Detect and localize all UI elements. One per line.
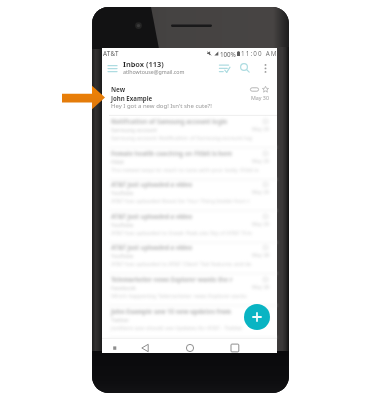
staticText: Twitter [111,316,130,323]
button[interactable]: Female health coaching on Fitbit is here [102,148,277,180]
staticText: AT&T has uploaded to Sneak Peak aka Sky … [111,229,253,236]
button[interactable]: AT&T just uploaded a video [102,179,277,211]
button[interactable]: AT&T just uploaded a video [102,242,277,274]
button[interactable]: Compose [244,304,270,330]
staticText: Fitbit [111,158,125,165]
staticText: AT&T just uploaded a video [111,212,193,220]
staticText: Female health coaching on Fitbit is here [111,149,233,157]
staticText: John Example [111,94,153,102]
button[interactable]: Back [135,338,155,353]
staticText: YouTube [111,252,134,259]
button[interactable]: Home [180,338,200,353]
button[interactable]: Sort [213,60,235,76]
staticText: YouTube [111,189,134,196]
button[interactable]: Notification of Samsung account login [102,116,277,148]
staticText: atlhowtouse@gmail.com [123,68,185,75]
staticText: May 29 [252,189,270,196]
staticText: 100% [220,50,236,58]
staticText: May 28 [252,284,270,291]
button[interactable]: AT&T just uploaded a video [102,211,277,243]
staticText: May 28 [252,252,270,259]
staticText: May 29 [252,221,270,228]
staticText: YouTube [111,221,134,228]
staticText: Telemarketer news Explorer wants the r [111,275,233,283]
staticText: Inbox (113) [123,59,164,69]
staticText: AT&T has uploaded Boost for Your Thing I… [111,197,250,204]
staticText: Jonthere saw should see Updates for AT&T… [111,324,243,331]
button[interactable]: John Example saw 10 new updates from [102,306,277,338]
staticText: John Example saw 10 new updates from [111,307,232,315]
button[interactable]: Telemarketer news Explorer wants the r [102,274,277,306]
staticText: Which happening Telemarketer news Explor… [111,292,247,299]
staticText: AT&T just uploaded a video [111,243,193,251]
staticText: 11:00 AM [241,49,278,58]
button[interactable]: Recent apps [225,338,245,353]
staticText: AT&T [103,49,119,57]
staticText: May 29 [252,158,270,165]
staticText: May 30 [251,94,269,101]
staticText: The newest ways to reach to tune with yo… [111,166,259,173]
staticText: AT&T just uploaded a video [111,180,193,188]
button[interactable]: New [102,84,277,116]
staticText: AT&T has uploaded to AT&T Client' Ted fe… [111,260,252,267]
button[interactable]: More options [257,60,273,76]
staticText: May 28 [252,316,270,323]
staticText: May 29 [252,126,270,133]
staticText: Samsung account [111,126,157,133]
button[interactable]: Search [236,60,254,76]
staticText: Notification of Samsung account login [111,117,228,125]
button[interactable]: Open navigation drawer [104,61,121,75]
staticText: Hey I got a new dog! Isn't she cute?! [111,102,212,110]
staticText: Facebook [111,284,136,291]
staticText: Samsung account Notification of Samsung … [111,134,253,141]
staticText: New [111,85,126,94]
